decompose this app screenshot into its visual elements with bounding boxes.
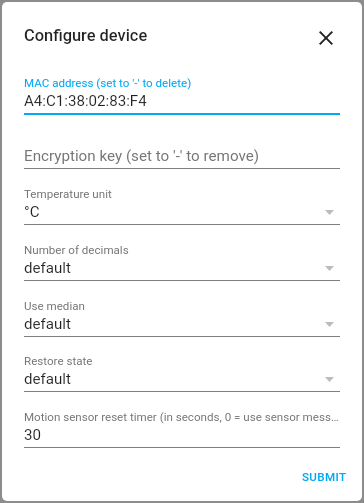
button[interactable]: MAC address (set to '-' to delete) [24, 79, 340, 115]
staticText: A4:C1:38:02:83:F4 [24, 92, 147, 110]
staticText: Temperature unit [24, 187, 339, 201]
staticText: Motion sensor reset timer (in seconds, 0… [24, 410, 339, 424]
staticText: Restore state [24, 354, 339, 368]
staticText: default [24, 370, 71, 388]
button[interactable]: Motion sensor reset timer (in seconds, 0… [24, 413, 340, 448]
staticText: Number of decimals [24, 243, 339, 257]
button[interactable]: Close [312, 24, 340, 52]
button[interactable]: Restore state [24, 357, 340, 392]
staticText: default [24, 259, 71, 277]
button[interactable]: SUBMIT [292, 464, 356, 494]
button[interactable]: Use median [24, 302, 340, 337]
staticText: 30 [24, 426, 41, 444]
button[interactable]: Number of decimals [24, 246, 340, 281]
staticText: SUBMIT [302, 470, 347, 484]
button[interactable]: Encryption key (set to '-' to remove) [24, 142, 340, 169]
staticText: default [24, 315, 71, 333]
button[interactable]: Temperature unit [24, 190, 340, 225]
staticText: Encryption key (set to '-' to remove) [24, 147, 260, 165]
staticText: Configure device [24, 26, 148, 45]
staticText: Use median [24, 299, 339, 313]
staticText: MAC address (set to '-' to delete) [24, 76, 339, 90]
staticText: °C [24, 203, 40, 221]
